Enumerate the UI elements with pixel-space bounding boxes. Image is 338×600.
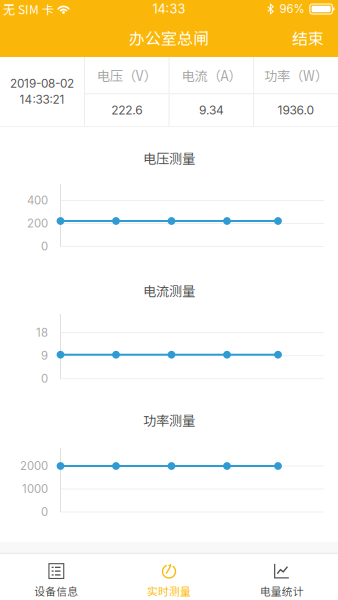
staticText: 1000 xyxy=(22,482,48,496)
button[interactable]: 设备信息 xyxy=(0,553,113,598)
staticText: 200 xyxy=(27,217,48,230)
staticText: 0 xyxy=(41,372,48,385)
staticText: 电流测量 xyxy=(143,281,195,300)
staticText: 9.34 xyxy=(199,103,224,117)
staticText: 18 xyxy=(36,326,48,339)
staticText: 实时测量 xyxy=(147,583,191,598)
staticText: 办公室总闸 xyxy=(129,26,209,49)
staticText: 设备信息 xyxy=(34,583,78,598)
staticText: 功率测量 xyxy=(143,410,195,430)
staticText: 无 SIM 卡 xyxy=(3,0,54,18)
staticText: 96% xyxy=(279,2,304,16)
staticText: 电压测量 xyxy=(143,148,195,168)
button[interactable]: 结束 xyxy=(278,18,338,57)
staticText: 400 xyxy=(27,194,48,207)
staticText: 1936.0 xyxy=(278,103,315,117)
button[interactable]: 电量统计 xyxy=(225,553,338,598)
staticText: 2000 xyxy=(20,459,48,473)
staticText: 电流（A） xyxy=(181,65,241,85)
staticText: 电压（V） xyxy=(97,65,157,85)
staticText: 9 xyxy=(41,349,48,362)
staticText: 结束 xyxy=(292,26,324,49)
staticText: 功率（W） xyxy=(264,65,328,85)
staticText: 222.6 xyxy=(111,103,142,117)
staticText: 0 xyxy=(41,240,48,253)
staticText: 14:33 xyxy=(152,1,185,17)
staticText: 0 xyxy=(41,505,48,519)
staticText: 14:33:21 xyxy=(19,92,64,107)
staticText: 电量统计 xyxy=(260,583,304,598)
staticText: 2019-08-02 xyxy=(10,76,74,90)
button[interactable]: 实时测量 xyxy=(113,553,225,598)
